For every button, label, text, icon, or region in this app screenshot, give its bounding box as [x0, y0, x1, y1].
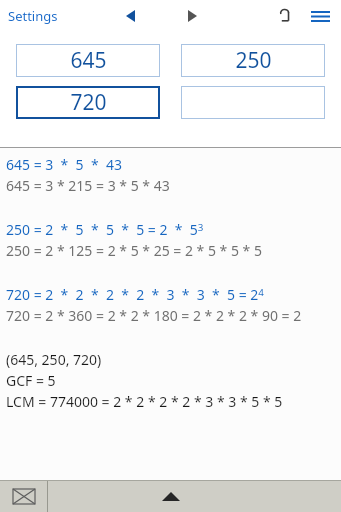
- staticText: 720 = 2 * 360 = 2 * 2 * 180 = 2 * 2 * 2 …: [6, 306, 302, 325]
- staticText: (645, 250, 720): [6, 350, 102, 369]
- staticText: 720 = 2 * 2 * 2 * 2 * 3 * 3 * 5 = 24: [6, 285, 264, 304]
- button[interactable]: Settings: [0, 3, 64, 29]
- button[interactable]: [181, 86, 325, 119]
- button[interactable]: 645: [16, 44, 160, 77]
- staticText: 250 = 2 * 125 = 2 * 5 * 25 = 2 * 5 * 5 *…: [6, 241, 262, 260]
- button[interactable]: Previous: [117, 3, 143, 29]
- staticText: 250: [235, 46, 272, 75]
- staticText: 250 = 2 * 5 * 5 * 5 = 2 * 53: [6, 220, 204, 239]
- staticText: LCM = 774000 = 2 * 2 * 2 * 2 * 3 * 3 * 5…: [6, 392, 283, 411]
- button[interactable]: Mail: [0, 481, 47, 512]
- button[interactable]: 720: [16, 86, 160, 119]
- staticText: 645 = 3 * 215 = 3 * 5 * 43: [6, 176, 170, 195]
- button[interactable]: Expand: [48, 481, 293, 512]
- staticText: GCF = 5: [6, 371, 56, 390]
- staticText: 645 = 3 * 5 * 43: [6, 155, 122, 174]
- staticText: 645: [70, 46, 107, 75]
- staticText: 720: [70, 88, 107, 117]
- button[interactable]: Undo: [271, 2, 299, 30]
- button[interactable]: Next: [179, 3, 205, 29]
- button[interactable]: 250: [181, 44, 325, 77]
- button[interactable]: Menu: [305, 1, 335, 31]
